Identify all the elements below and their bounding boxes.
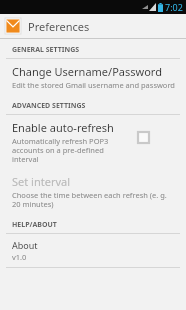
button[interactable]: Enable auto-refresh: [0, 115, 186, 169]
other: App icon: [5, 18, 21, 34]
button[interactable]: Enable auto-refresh checkbox: [138, 132, 149, 143]
staticText: Preferences: [28, 19, 90, 34]
staticText: Change Username/Password: [12, 64, 162, 79]
button[interactable]: About: [0, 234, 186, 267]
staticText: ADVANCED SETTINGS: [12, 101, 86, 111]
staticText: HELP/ABOUT: [12, 220, 57, 230]
staticText: Edit the stored Gmail username and passw…: [12, 80, 175, 90]
button[interactable]: Change Username/Password: [0, 59, 186, 95]
button[interactable]: App icon: [0, 14, 186, 38]
staticText: GENERAL SETTINGS: [12, 45, 80, 55]
staticText: 7:02: [165, 1, 183, 13]
staticText: v1.0: [12, 252, 27, 262]
staticText: About: [12, 239, 38, 251]
button[interactable]: Set interval: [0, 169, 186, 214]
staticText: Set interval: [12, 174, 71, 189]
staticText: Enable auto-refresh: [12, 120, 114, 135]
staticText: Automatically refresh POP3 accounts on a…: [12, 136, 132, 164]
staticText: Choose the time between each refresh (e.…: [12, 190, 176, 209]
